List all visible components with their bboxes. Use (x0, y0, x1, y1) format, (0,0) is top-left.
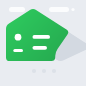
button[interactable]: Identity card illustration (0, 0, 86, 86)
